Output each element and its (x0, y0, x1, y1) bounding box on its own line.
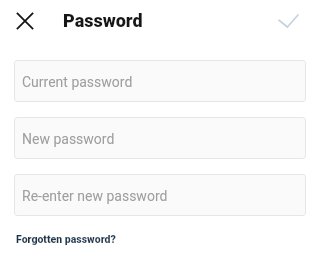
button[interactable]: Close (8, 4, 41, 37)
staticText: Forgotten password? (16, 233, 116, 245)
staticText: Current password (22, 74, 133, 90)
button[interactable]: Re-enter new password (14, 174, 306, 216)
staticText: Re-enter new password (22, 188, 168, 204)
button[interactable]: Forgotten password? (16, 233, 116, 245)
button[interactable]: Save password (272, 5, 304, 37)
button[interactable]: Current password (14, 60, 306, 102)
staticText: Password (63, 10, 143, 31)
button[interactable]: New password (14, 117, 306, 159)
staticText: New password (22, 131, 115, 147)
